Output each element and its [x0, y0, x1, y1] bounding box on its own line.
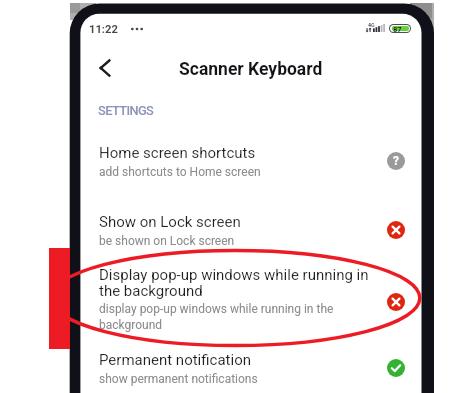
- staticText: SETTINGS: [98, 103, 154, 118]
- staticText: ?: [393, 154, 399, 168]
- button[interactable]: Home screen shortcuts: [80, 138, 421, 179]
- button[interactable]: Permanent notification: [80, 345, 421, 386]
- button[interactable]: Show on Lock screen: [80, 207, 421, 248]
- staticText: add shortcuts to Home screen: [99, 165, 261, 179]
- staticText: be shown on Lock screen: [99, 234, 235, 248]
- staticText: 11:22: [89, 23, 118, 36]
- staticText: 87: [393, 25, 402, 34]
- staticText: 4G: [368, 22, 375, 28]
- staticText: Permanent notification: [99, 351, 251, 369]
- button[interactable]: Display pop-up windows while running in …: [80, 260, 421, 332]
- staticText: Show on Lock screen: [99, 213, 241, 231]
- staticText: Display pop-up windows while running in …: [99, 266, 380, 299]
- staticText: show permanent notifications: [99, 372, 258, 386]
- staticText: Scanner Keyboard: [179, 59, 323, 80]
- button[interactable]: Back: [87, 50, 123, 86]
- staticText: Home screen shortcuts: [99, 144, 256, 162]
- staticText: display pop-up windows while running in …: [99, 302, 380, 332]
